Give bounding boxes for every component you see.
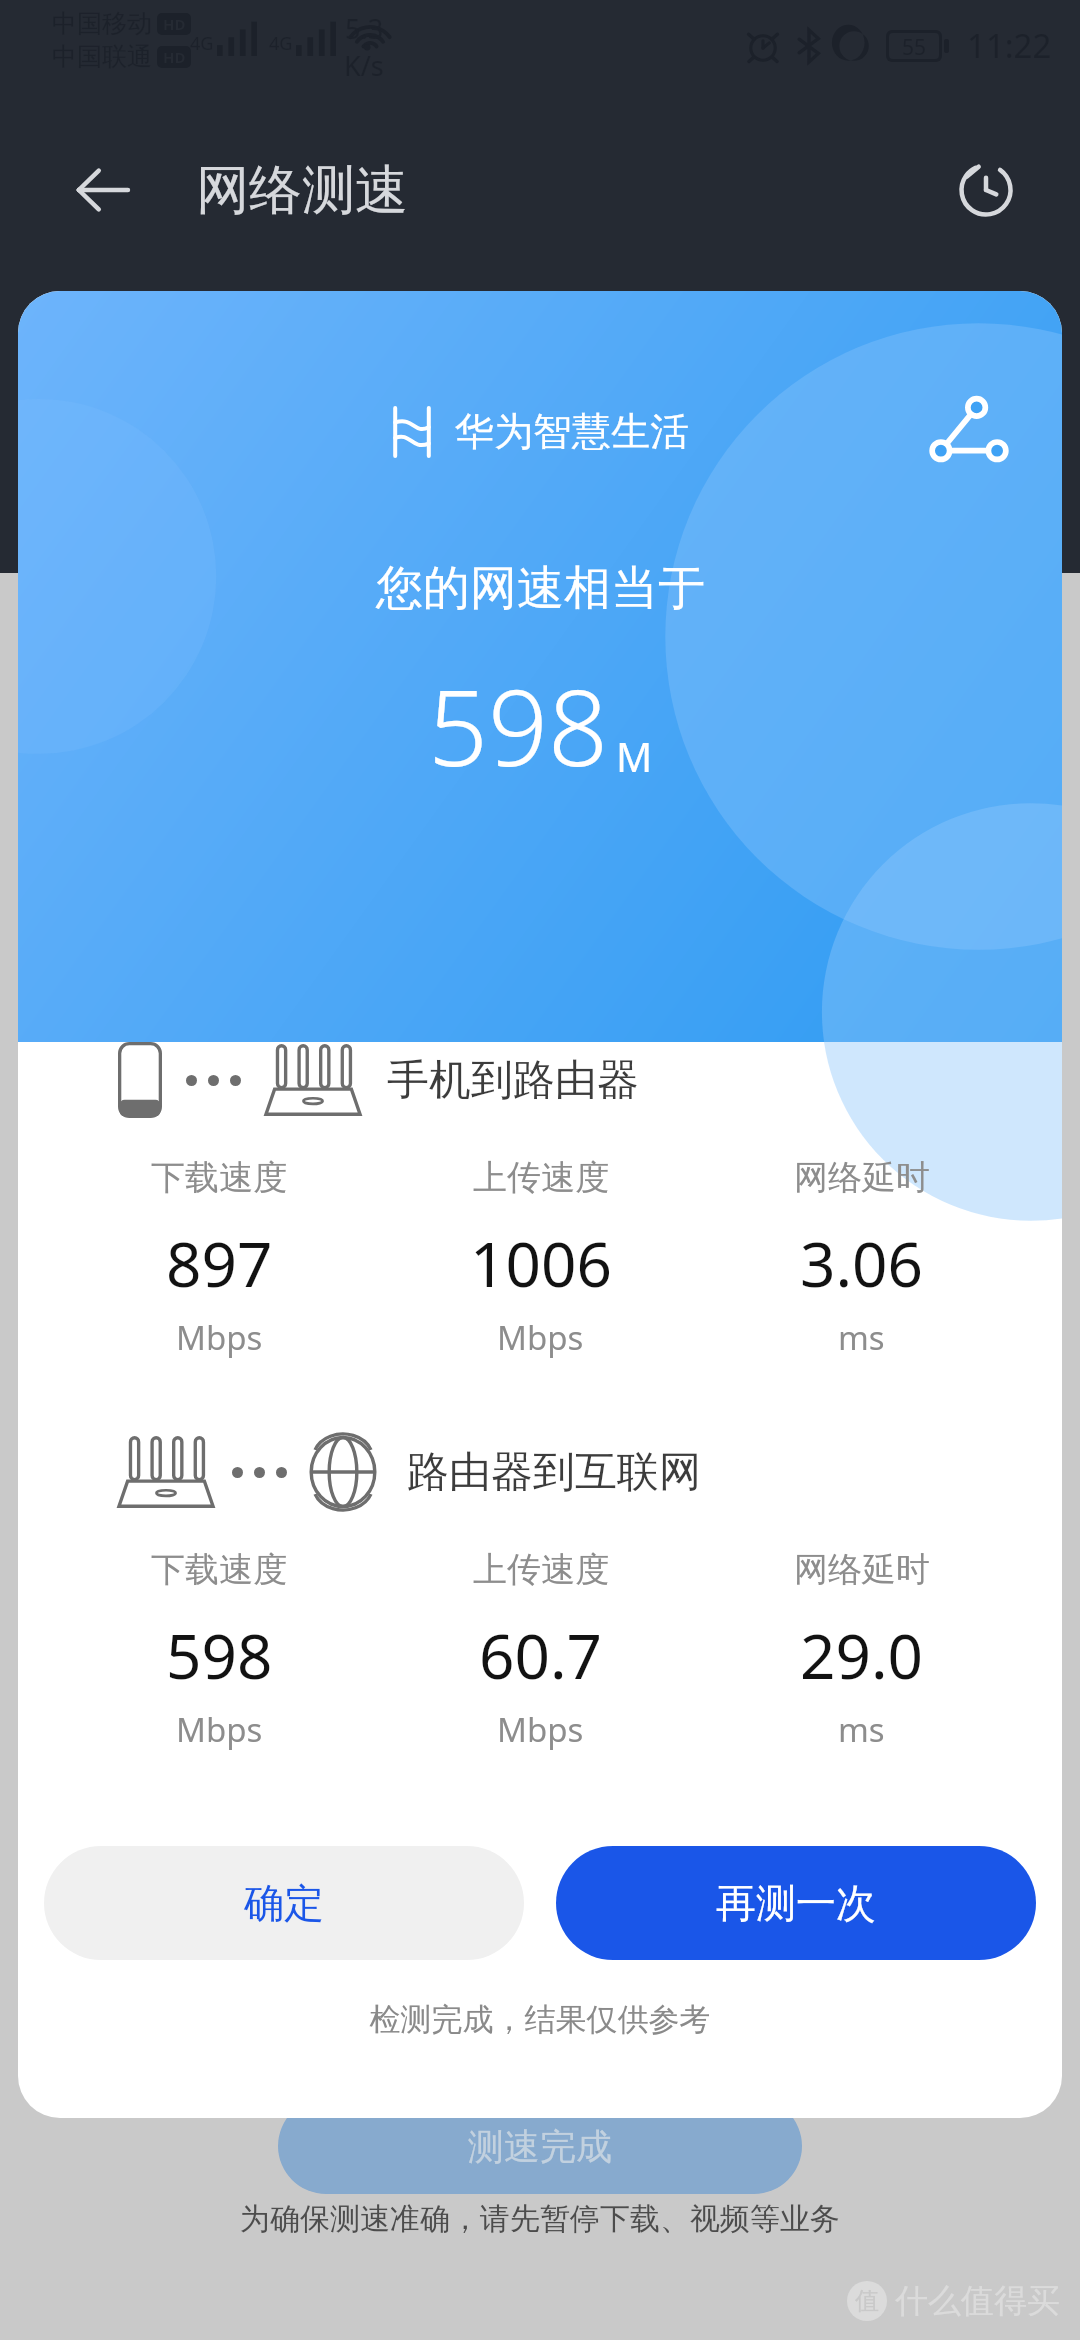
staticText: ms xyxy=(838,1315,885,1360)
button[interactable]: History xyxy=(944,148,1028,232)
staticText: 60.7 xyxy=(479,1613,603,1697)
staticText: 再测一次 xyxy=(716,1878,876,1928)
staticText: 检测完成，结果仅供参考 xyxy=(18,2000,1062,2039)
staticText: 什么值得买 xyxy=(895,2280,1060,2322)
staticText: Mbps xyxy=(176,1707,263,1752)
button[interactable]: 再测一次 xyxy=(556,1846,1036,1960)
staticText: K/s xyxy=(344,47,384,84)
staticText: HD xyxy=(163,14,186,34)
staticText: 29.0 xyxy=(800,1613,924,1697)
button[interactable]: Back xyxy=(62,150,142,230)
staticText: 网络延时 xyxy=(794,1156,930,1199)
staticText: ms xyxy=(838,1707,885,1752)
staticText: 中国移动 xyxy=(52,8,152,39)
staticText: 1006 xyxy=(470,1221,612,1305)
staticText: Mbps xyxy=(176,1315,263,1360)
staticText: 华为智慧生活 xyxy=(455,407,689,456)
staticText: 值 xyxy=(855,2286,879,2316)
button[interactable]: 测速完成 xyxy=(278,2098,802,2194)
staticText: 上传速度 xyxy=(473,1156,609,1199)
staticText: 网络延时 xyxy=(794,1548,930,1591)
staticText: 3.06 xyxy=(800,1221,924,1305)
button[interactable]: 确定 xyxy=(44,1846,524,1960)
staticText: HD xyxy=(163,47,186,67)
staticText: M xyxy=(616,729,653,783)
staticText: 网络测速 xyxy=(196,157,408,224)
staticText: 您的网速相当于 xyxy=(376,559,705,618)
staticText: 598 xyxy=(428,654,608,797)
staticText: 上传速度 xyxy=(473,1548,609,1591)
staticText: 确定 xyxy=(244,1878,324,1928)
staticText: Mbps xyxy=(497,1707,584,1752)
staticText: 下载速度 xyxy=(151,1156,287,1199)
staticText: 为确保测速准确，请先暂停下载、视频等业务 xyxy=(240,2200,840,2238)
button[interactable]: Share xyxy=(914,379,1024,489)
staticText: 手机到路由器 xyxy=(387,1054,639,1107)
staticText: 5.3 xyxy=(345,10,384,47)
staticText: 路由器到互联网 xyxy=(407,1446,701,1499)
staticText: 下载速度 xyxy=(151,1548,287,1591)
staticText: 598 xyxy=(166,1613,273,1697)
staticText: 897 xyxy=(166,1221,273,1305)
staticText: Mbps xyxy=(497,1315,584,1360)
staticText: 中国联通 xyxy=(52,41,152,72)
staticText: 测速完成 xyxy=(468,2124,612,2169)
